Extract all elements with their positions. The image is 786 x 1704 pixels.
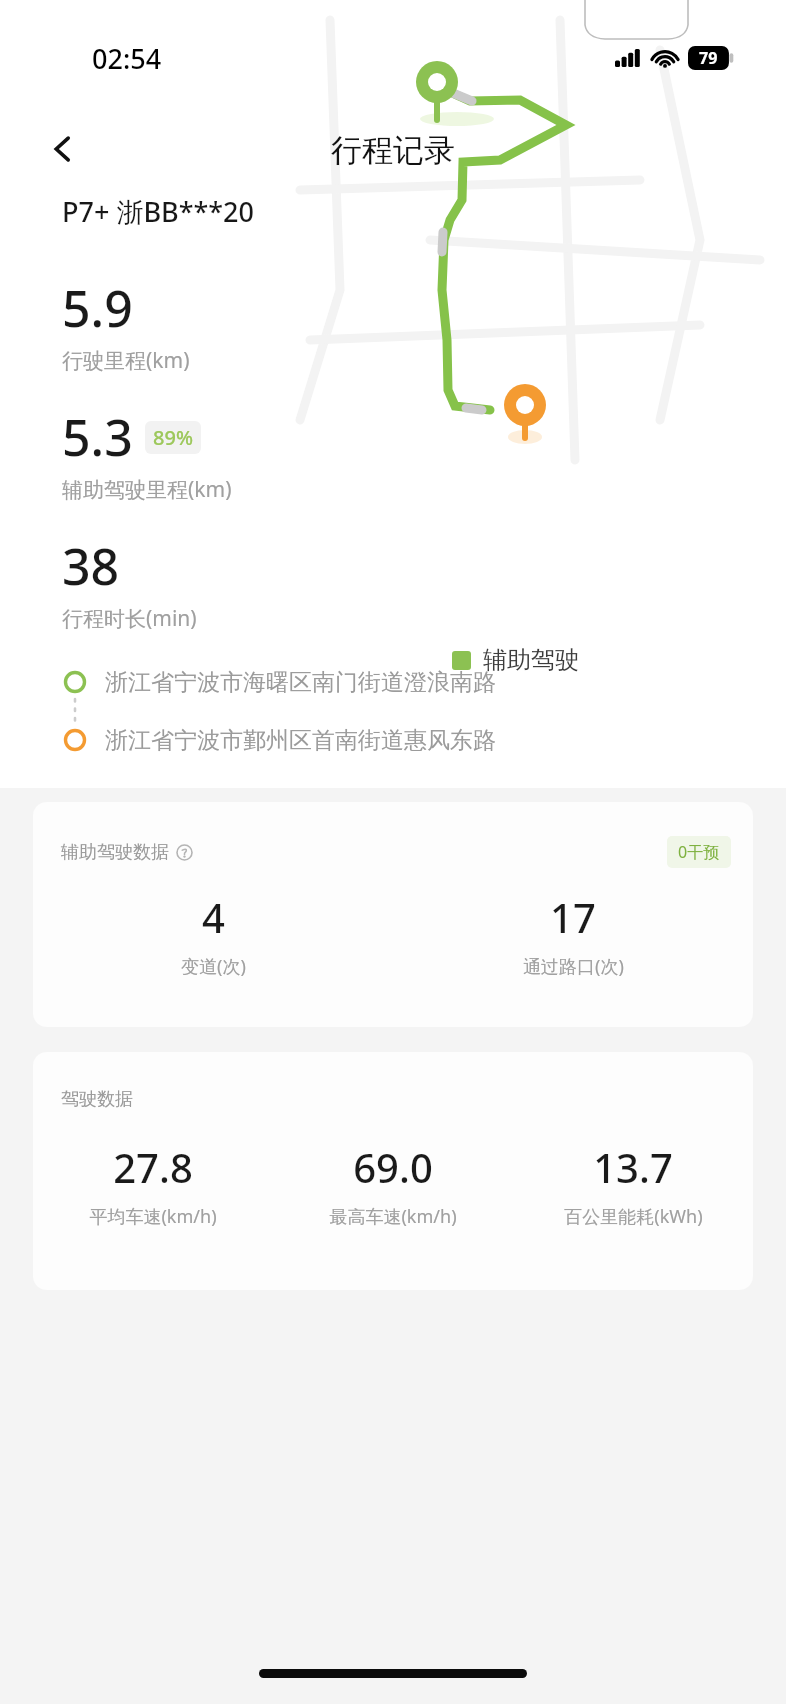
staticText: 变道(次) bbox=[181, 954, 246, 979]
staticText: 4 bbox=[202, 890, 225, 944]
staticText: 行驶里程(km) bbox=[62, 346, 190, 375]
staticText: 行程时长(min) bbox=[62, 604, 197, 633]
staticText: 13.7 bbox=[593, 1140, 673, 1194]
button[interactable]: 行程地图 bbox=[0, 0, 786, 660]
button[interactable]: 辅助驾驶数据 bbox=[33, 802, 753, 1027]
staticText: 38 bbox=[62, 532, 120, 600]
staticText: 辅助驾驶数据 bbox=[61, 841, 169, 864]
button[interactable]: 驾驶数据 bbox=[33, 1052, 753, 1290]
staticText: 27.8 bbox=[113, 1140, 193, 1194]
staticText: 最高车速(km/h) bbox=[329, 1204, 457, 1229]
staticText: 辅助驾驶 bbox=[483, 645, 579, 675]
staticText: 平均车速(km/h) bbox=[89, 1204, 217, 1229]
staticText: 行程记录 bbox=[331, 131, 455, 170]
button[interactable]: 返回 bbox=[36, 122, 90, 176]
staticText: 0干预 bbox=[678, 841, 720, 863]
staticText: 辅助驾驶里程(km) bbox=[62, 475, 232, 504]
staticText: 浙江省宁波市海曙区南门街道澄浪南路 bbox=[105, 668, 496, 697]
staticText: 浙江省宁波市鄞州区首南街道惠风东路 bbox=[105, 726, 496, 755]
staticText: 17 bbox=[550, 890, 596, 944]
staticText: 89% bbox=[153, 424, 193, 451]
staticText: P7+ 浙BB***20 bbox=[62, 193, 254, 230]
staticText: 02:54 bbox=[92, 40, 162, 77]
staticText: 79 bbox=[699, 47, 718, 69]
staticText: 5.9 bbox=[62, 274, 133, 342]
staticText: 通过路口(次) bbox=[523, 954, 624, 979]
staticText: 百公里能耗(kWh) bbox=[564, 1204, 703, 1229]
staticText: 驾驶数据 bbox=[61, 1088, 133, 1111]
button[interactable]: 说明 bbox=[176, 844, 193, 861]
staticText: 5.3 bbox=[62, 403, 133, 471]
staticText: 69.0 bbox=[353, 1140, 433, 1194]
